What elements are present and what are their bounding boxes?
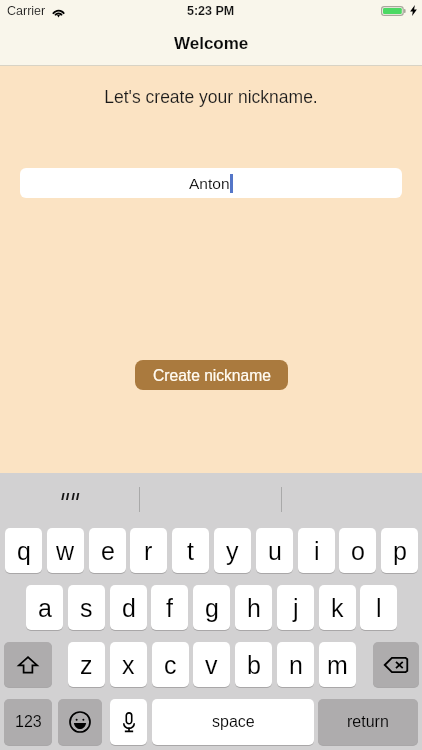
- staticText: c: [164, 651, 177, 679]
- staticText: l: [376, 594, 382, 622]
- staticText: Let's create your nickname.: [0, 87, 422, 107]
- staticText: y: [226, 537, 239, 565]
- other: Wi-Fi: [51, 6, 66, 17]
- button[interactable]: e: [89, 528, 126, 573]
- staticText: j: [293, 594, 299, 622]
- button[interactable]: h: [235, 585, 272, 630]
- button[interactable]: k: [319, 585, 356, 630]
- button[interactable]: x: [110, 642, 147, 687]
- button[interactable]: Backspace: [373, 642, 419, 687]
- button[interactable]: j: [277, 585, 314, 630]
- button[interactable]: s: [68, 585, 105, 630]
- button[interactable]: [0, 473, 139, 517]
- button[interactable]: f: [151, 585, 188, 630]
- staticText: d: [122, 594, 136, 622]
- button[interactable]: 123: [4, 699, 52, 745]
- staticText: v: [205, 651, 218, 679]
- button[interactable]: g: [193, 585, 230, 630]
- staticText: r: [144, 537, 153, 565]
- staticText: q: [17, 537, 31, 565]
- button[interactable]: Create nickname: [135, 360, 288, 390]
- button[interactable]: q: [5, 528, 42, 573]
- staticText: m: [327, 651, 348, 679]
- staticText: s: [80, 594, 93, 622]
- button[interactable]: r: [130, 528, 167, 573]
- button[interactable]: space: [152, 699, 314, 745]
- staticText: u: [268, 537, 282, 565]
- button[interactable]: v: [193, 642, 230, 687]
- staticText: x: [122, 651, 135, 679]
- staticText: k: [331, 594, 344, 622]
- staticText: e: [101, 537, 115, 565]
- staticText: g: [205, 594, 219, 622]
- button[interactable]: Dictate: [110, 699, 147, 745]
- button[interactable]: l: [360, 585, 397, 630]
- button[interactable]: Anton: [20, 168, 402, 198]
- staticText: Welcome: [174, 34, 249, 53]
- staticText: space: [212, 713, 255, 731]
- button[interactable]: i: [298, 528, 335, 573]
- button[interactable]: w: [47, 528, 84, 573]
- staticText: Anton: [189, 175, 230, 192]
- staticText: Create nickname: [153, 367, 271, 384]
- staticText: z: [80, 651, 93, 679]
- button[interactable]: d: [110, 585, 147, 630]
- button[interactable]: u: [256, 528, 293, 573]
- button[interactable]: o: [339, 528, 376, 573]
- button[interactable]: b: [235, 642, 272, 687]
- staticText: 5:23 PM: [187, 4, 235, 18]
- staticText: o: [351, 537, 365, 565]
- staticText: i: [314, 537, 320, 565]
- staticText: h: [247, 594, 261, 622]
- staticText: t: [187, 537, 194, 565]
- staticText: 123: [15, 713, 42, 731]
- staticText: Carrier: [7, 4, 46, 18]
- staticText: p: [393, 537, 407, 565]
- staticText: a: [38, 594, 52, 622]
- button[interactable]: t: [172, 528, 209, 573]
- button[interactable]: Emoji: [58, 699, 102, 745]
- button[interactable]: a: [26, 585, 63, 630]
- staticText: f: [166, 594, 173, 622]
- staticText: n: [289, 651, 303, 679]
- staticText: w: [56, 537, 75, 565]
- button[interactable]: c: [152, 642, 189, 687]
- button[interactable]: y: [214, 528, 251, 573]
- button[interactable]: p: [381, 528, 418, 573]
- staticText: return: [347, 713, 389, 731]
- button[interactable]: return: [318, 699, 418, 745]
- button[interactable]: Shift: [4, 642, 52, 687]
- button[interactable]: n: [277, 642, 314, 687]
- button[interactable]: z: [68, 642, 105, 687]
- staticText: b: [247, 651, 261, 679]
- button[interactable]: m: [319, 642, 356, 687]
